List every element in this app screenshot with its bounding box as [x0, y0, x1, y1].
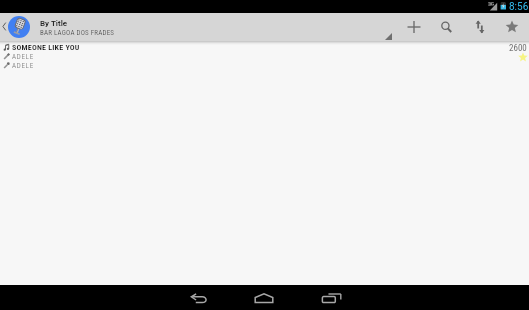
button[interactable]: Favorites: [496, 13, 528, 41]
staticText: BAR LAGOA DOS FRADES: [40, 29, 115, 37]
button[interactable]: Search: [430, 13, 462, 41]
button[interactable]: Back: [163, 285, 233, 310]
staticText: ADELE: [12, 62, 34, 70]
staticText: 8:56: [509, 1, 529, 13]
button[interactable]: Sort direction: [381, 13, 396, 41]
button[interactable]: Home: [229, 285, 299, 310]
staticText: By Title: [40, 19, 68, 28]
staticText: 2600: [509, 43, 527, 54]
button[interactable]: Add: [398, 13, 430, 41]
button[interactable]: Sort: [464, 13, 496, 41]
staticText: ADELE: [12, 53, 34, 61]
button[interactable]: By Title: [0, 16, 115, 38]
button[interactable]: SOMEONE LIKE YOU: [0, 41, 529, 68]
button[interactable]: Recents: [296, 285, 366, 310]
staticText: SOMEONE LIKE YOU: [12, 43, 80, 52]
